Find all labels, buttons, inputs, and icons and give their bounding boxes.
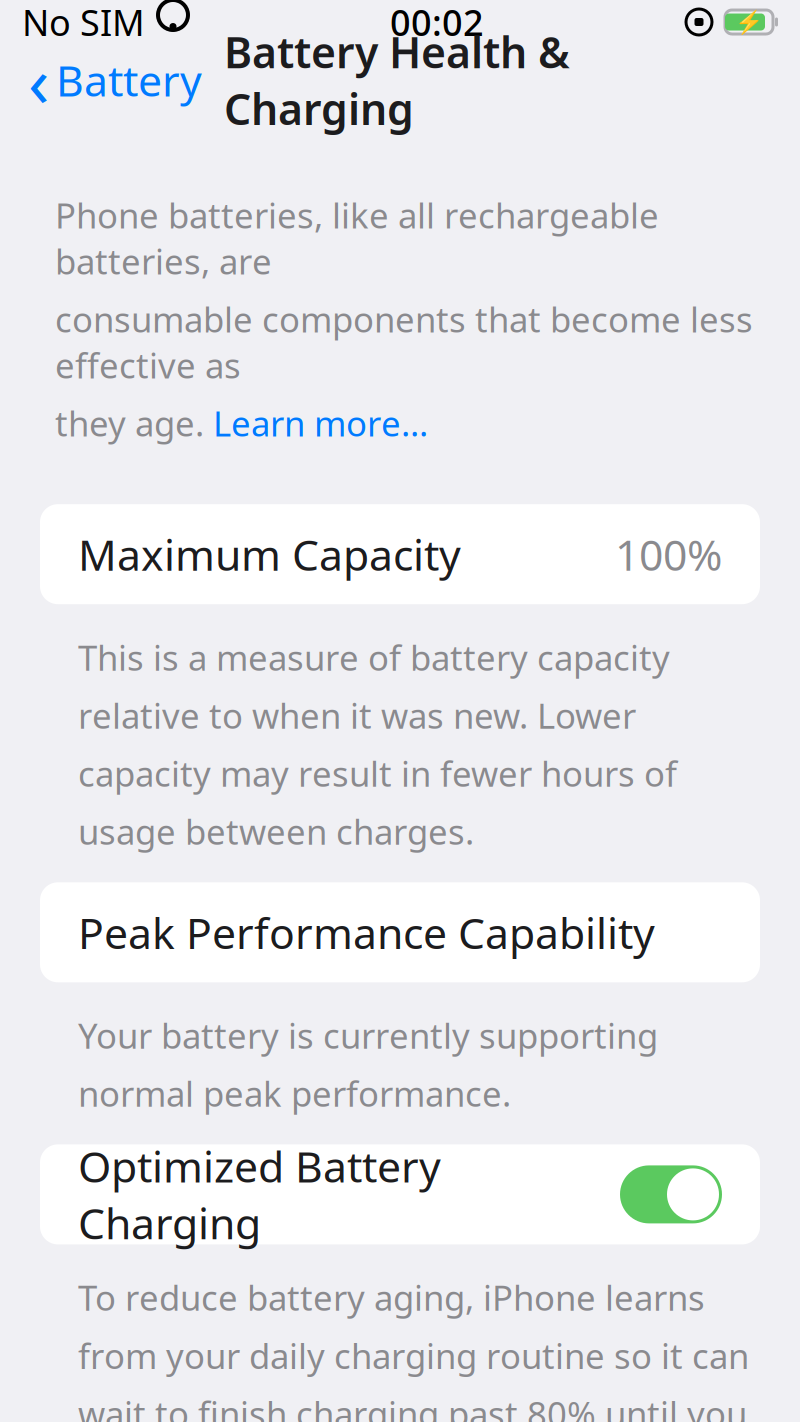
staticText: No SIM (22, 0, 145, 46)
staticText: To reduce battery aging, iPhone learns f… (78, 1274, 749, 1422)
staticText: ‹ (28, 34, 49, 126)
staticText: Optimized Battery Charging (78, 1138, 441, 1251)
staticText: This is a measure of battery capacity re… (78, 634, 677, 854)
staticText: 00:02 (390, 0, 484, 46)
button[interactable]: Optimized Battery Charging (0, 1144, 800, 1244)
staticText: Maximum Capacity (78, 526, 461, 583)
staticText: ⚡ (735, 9, 763, 35)
staticText: 100% (615, 526, 722, 583)
staticText: Peak Performance Capability (78, 904, 655, 961)
staticText: Phone batteries, like all rechargeable b… (55, 192, 659, 284)
staticText: Learn more... (213, 400, 428, 446)
button[interactable]: Peak Performance Capability (0, 882, 800, 982)
button[interactable]: ‹ (22, 30, 208, 130)
staticText: they age. (55, 400, 213, 446)
staticText: consumable components that become less e… (55, 296, 753, 388)
button[interactable]: Learn more... (213, 400, 428, 446)
staticText: Your battery is currently supporting nor… (78, 1012, 658, 1116)
staticText: Battery Health & Charging (224, 23, 570, 137)
staticText: Battery (56, 52, 202, 108)
